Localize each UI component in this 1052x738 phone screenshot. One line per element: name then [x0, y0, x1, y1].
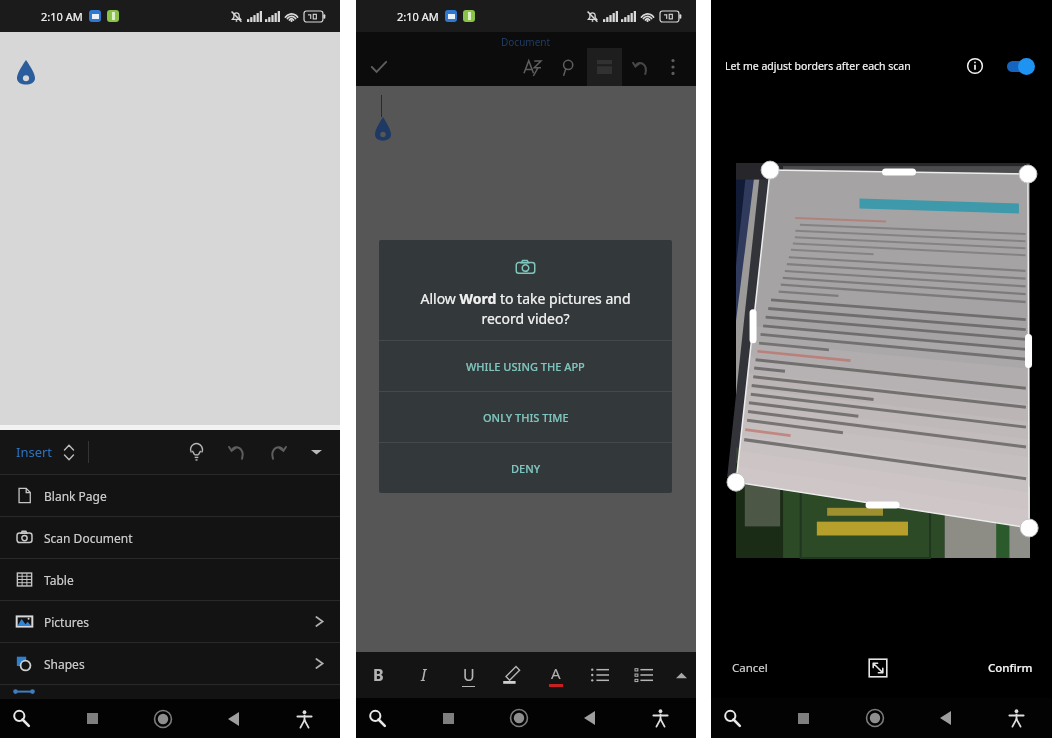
button[interactable]: Accessibility	[269, 699, 340, 738]
button[interactable]: Table	[0, 559, 340, 600]
button[interactable]: Search	[553, 52, 583, 82]
button[interactable]: Redo	[263, 437, 293, 467]
staticText: Shapes	[44, 656, 85, 672]
button[interactable]: Back	[910, 698, 981, 738]
button[interactable]: Tell me	[181, 437, 211, 467]
button[interactable]: Zoom	[0, 699, 43, 738]
staticText: Insert	[16, 443, 53, 461]
staticText: B	[373, 664, 384, 686]
button[interactable]: Accessibility	[625, 698, 696, 738]
button[interactable]: ONLY THIS TIME	[379, 392, 672, 442]
button[interactable]: Shapes	[0, 643, 340, 684]
button[interactable]: Crop	[863, 653, 893, 683]
button[interactable]: U	[446, 652, 490, 698]
staticText: DENY	[511, 461, 541, 476]
button[interactable]: Recents	[57, 699, 127, 738]
staticText: WHILE USING THE APP	[466, 359, 585, 374]
button[interactable]: Ink	[517, 52, 547, 82]
staticText: Scan Document	[44, 530, 133, 546]
staticText: I	[421, 664, 427, 686]
button[interactable]: Home	[483, 698, 554, 738]
button[interactable]	[0, 685, 340, 699]
button[interactable]: Home	[127, 699, 198, 738]
button[interactable]: Font color	[534, 652, 578, 698]
button[interactable]: Home	[839, 698, 910, 738]
staticText: Allow Word to take pictures and record v…	[415, 289, 636, 328]
button[interactable]: WHILE USING THE APP	[379, 341, 672, 391]
button[interactable]: Blank Page	[0, 475, 340, 516]
staticText: A	[551, 663, 561, 683]
button[interactable]: Recents	[768, 698, 839, 738]
staticText: Cancel	[732, 660, 768, 676]
button[interactable]: Highlight	[490, 652, 534, 698]
staticText: 2:10 AM	[41, 9, 83, 24]
staticText: 2:10 AM	[397, 9, 439, 24]
button[interactable]: Recents	[413, 698, 483, 738]
button[interactable]: Back	[198, 699, 269, 738]
button[interactable]: Insert	[16, 443, 74, 461]
button[interactable]: Scan Document	[0, 517, 340, 558]
button[interactable]: Toggle adjust borders	[1007, 57, 1035, 75]
button[interactable]: Done	[364, 52, 394, 82]
button[interactable]: More options	[658, 52, 688, 82]
button[interactable]: Zoom	[711, 698, 754, 738]
button[interactable]: Numbered list	[622, 652, 666, 698]
staticText: Confirm	[988, 660, 1033, 676]
button[interactable]: I	[401, 652, 446, 698]
button[interactable]: Zoom	[356, 698, 399, 738]
button[interactable]: Accessibility	[981, 698, 1052, 738]
staticText: Let me adjust borders after each scan	[725, 59, 911, 73]
button[interactable]: Pictures	[0, 601, 340, 642]
button[interactable]: Ribbon	[587, 48, 622, 86]
staticText: U	[463, 664, 475, 686]
button[interactable]: Undo	[222, 437, 252, 467]
staticText: Document	[501, 35, 551, 49]
button[interactable]: Expand ribbon	[666, 652, 696, 698]
staticText: ONLY THIS TIME	[483, 410, 569, 425]
button[interactable]: Undo	[625, 52, 655, 82]
button[interactable]: B	[356, 652, 401, 698]
button[interactable]: Cancel	[724, 650, 776, 686]
button[interactable]: Info	[964, 55, 986, 77]
button[interactable]: Confirm	[980, 650, 1041, 686]
button[interactable]: DENY	[379, 443, 672, 493]
button[interactable]: Bulleted list	[578, 652, 622, 698]
staticText: Blank Page	[44, 488, 107, 504]
staticText: Pictures	[44, 614, 90, 630]
button[interactable]: Collapse ribbon	[302, 438, 330, 466]
staticText: Table	[44, 572, 74, 588]
button[interactable]: Back	[554, 698, 625, 738]
